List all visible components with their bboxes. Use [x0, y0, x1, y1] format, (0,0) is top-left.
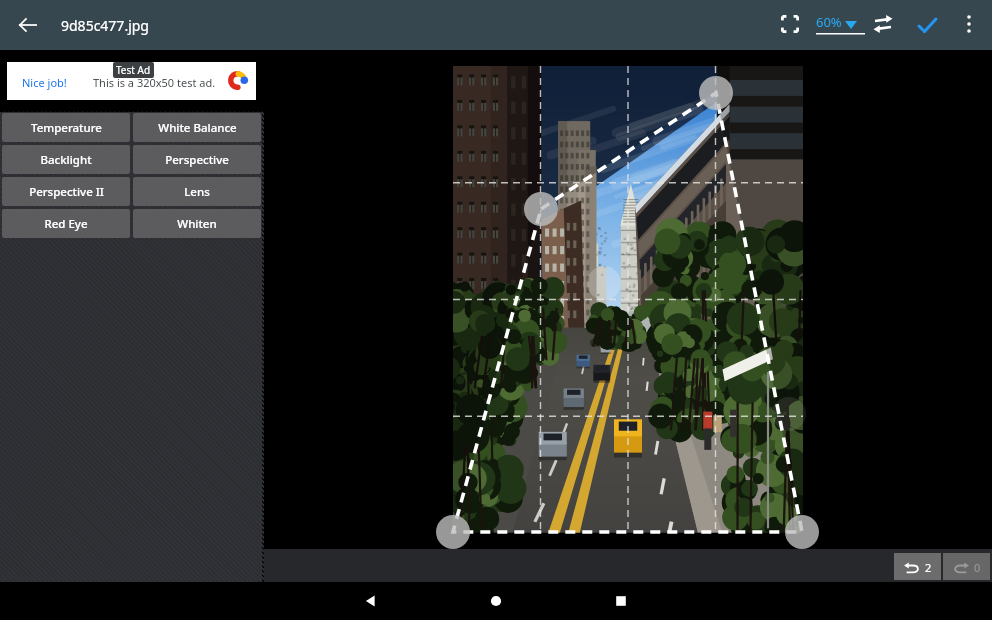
staticText: Backlight: [40, 152, 92, 168]
staticText: Temperature: [31, 120, 102, 136]
button[interactable]: Perspective II: [2, 177, 130, 206]
staticText: Whiten: [177, 216, 217, 232]
button[interactable]: Fullscreen: [776, 10, 804, 38]
button[interactable]: Back: [14, 11, 42, 39]
button[interactable]: Back: [356, 586, 386, 616]
button[interactable]: Redo: [943, 553, 990, 580]
button[interactable]: Temperature: [2, 113, 130, 142]
staticText: This is a 320x50 test ad.: [93, 75, 216, 90]
staticText: Nice job!: [22, 75, 67, 90]
button[interactable]: Compare: [869, 10, 897, 38]
staticText: Perspective II: [29, 184, 104, 200]
staticText: Red Eye: [44, 216, 88, 232]
button[interactable]: Apply: [912, 10, 942, 40]
button[interactable]: 60%: [816, 10, 866, 38]
button[interactable]: More options: [955, 10, 983, 38]
button[interactable]: Red Eye: [2, 209, 130, 238]
staticText: Perspective: [165, 152, 229, 168]
button[interactable]: White Balance: [133, 113, 261, 142]
button[interactable]: Backlight: [2, 145, 130, 174]
staticText: 2: [925, 560, 932, 575]
button[interactable]: Recent apps: [606, 586, 636, 616]
staticText: 0: [974, 560, 981, 575]
staticText: White Balance: [158, 120, 237, 136]
button[interactable]: Home: [481, 586, 511, 616]
staticText: Test Ad: [116, 63, 151, 77]
staticText: 9d85c477.jpg: [61, 16, 149, 35]
button[interactable]: Perspective: [133, 145, 261, 174]
button[interactable]: Lens: [133, 177, 261, 206]
staticText: Lens: [184, 184, 210, 200]
button[interactable]: Whiten: [133, 209, 261, 238]
staticText: 60%: [816, 13, 842, 31]
button[interactable]: Undo: [894, 553, 941, 580]
button[interactable]: Nice job!: [7, 62, 256, 100]
